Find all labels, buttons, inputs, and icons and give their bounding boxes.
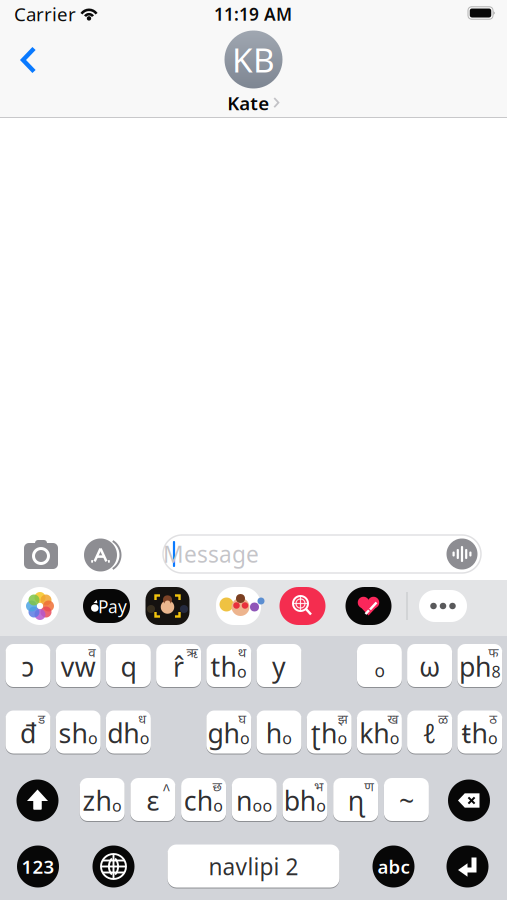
button[interactable]: đ xyxy=(5,710,50,754)
button[interactable]: Apps xyxy=(84,538,124,572)
staticText: ɛ xyxy=(146,783,159,818)
button[interactable]: Return xyxy=(446,845,488,887)
button[interactable]: ~ xyxy=(384,778,429,822)
staticText: 11:19 AM xyxy=(214,2,292,25)
staticText: ड xyxy=(38,710,45,727)
staticText: ठ xyxy=(489,710,497,727)
button[interactable]: ɛ xyxy=(130,778,175,822)
button[interactable]: Photos xyxy=(21,587,59,625)
button[interactable]: ph xyxy=(457,644,502,688)
staticText: झ xyxy=(338,710,348,727)
staticText: ~ xyxy=(399,783,414,818)
button[interactable]: ɔ xyxy=(5,644,50,688)
staticText: dh xyxy=(107,715,139,751)
button[interactable]: r̂ xyxy=(156,644,201,688)
staticText: भ xyxy=(314,777,323,795)
staticText: ळ xyxy=(438,710,448,727)
button[interactable]: vw xyxy=(56,644,101,688)
button[interactable]: Numbers xyxy=(17,845,59,887)
button[interactable]: h xyxy=(256,710,301,754)
staticText: Carrier xyxy=(14,2,76,26)
button[interactable]: kh xyxy=(357,710,402,754)
staticText: o xyxy=(488,727,498,749)
staticText: gh xyxy=(208,715,240,751)
button[interactable]: Camera xyxy=(23,540,58,570)
staticText: o xyxy=(88,727,98,749)
staticText: oo xyxy=(253,795,273,816)
button[interactable]: Delete xyxy=(448,779,490,821)
staticText: o xyxy=(140,727,150,749)
staticText: o xyxy=(240,727,250,749)
staticText: th xyxy=(211,649,237,684)
button[interactable]: ʈh xyxy=(307,710,352,754)
staticText: o xyxy=(316,795,326,816)
staticText: ʌ xyxy=(163,777,170,795)
staticText: r̂ xyxy=(173,649,184,684)
button[interactable]: th xyxy=(206,644,251,688)
button[interactable]: n xyxy=(232,778,277,822)
staticText: o xyxy=(213,795,223,816)
staticText: o xyxy=(282,727,292,749)
button[interactable]: sh xyxy=(56,710,101,754)
staticText: थ xyxy=(238,643,247,661)
button[interactable]: Back xyxy=(21,46,37,73)
staticText: ɳ xyxy=(348,783,364,818)
staticText: ch xyxy=(184,783,213,818)
staticText: o xyxy=(237,661,247,682)
button[interactable]: Apple Pay xyxy=(83,589,130,623)
staticText: abc xyxy=(377,854,409,879)
button[interactable]: zh xyxy=(80,778,125,822)
button[interactable]: Letters xyxy=(372,845,414,887)
staticText: kh xyxy=(359,715,389,751)
staticText: zh xyxy=(82,783,111,818)
staticText: ph xyxy=(459,649,491,684)
staticText: घ xyxy=(238,710,246,727)
staticText: sh xyxy=(58,715,87,751)
button[interactable]: y xyxy=(256,644,301,688)
button[interactable]: Dictate xyxy=(446,538,477,569)
button[interactable]: Space xyxy=(167,844,339,888)
staticText: ɔ xyxy=(21,649,34,684)
button[interactable]: ch xyxy=(181,778,226,822)
staticText: Kate xyxy=(227,91,269,115)
button[interactable]: Memoji Stickers xyxy=(145,587,189,625)
staticText: Pay xyxy=(98,595,127,618)
staticText: bh xyxy=(284,783,316,818)
staticText: o xyxy=(337,727,347,749)
staticText: navlipi 2 xyxy=(208,851,298,881)
button[interactable]: Shift xyxy=(16,779,58,821)
staticText: ध xyxy=(138,710,146,727)
button[interactable]: KB xyxy=(209,18,297,110)
button[interactable]: ɳ xyxy=(333,778,378,822)
button[interactable]: bh xyxy=(282,778,327,822)
staticText: n xyxy=(236,783,252,818)
staticText: h xyxy=(266,715,282,751)
staticText: ℓ xyxy=(423,715,437,751)
button[interactable]: gh xyxy=(206,710,251,754)
staticText: ऋ xyxy=(187,643,198,661)
button[interactable]: q xyxy=(106,644,151,688)
staticText: đ xyxy=(20,715,36,751)
staticText: ण xyxy=(364,777,374,795)
button[interactable]: ℓ xyxy=(407,710,452,754)
button[interactable]: Stickers xyxy=(216,587,261,625)
staticText: o xyxy=(112,795,122,816)
staticText: o xyxy=(374,659,384,682)
staticText: y xyxy=(272,649,286,684)
staticText: फ xyxy=(488,643,498,661)
staticText: Message xyxy=(163,539,259,569)
button[interactable]: dh xyxy=(106,710,151,754)
button[interactable]: More apps xyxy=(419,590,467,622)
button[interactable]: ŧh xyxy=(457,710,502,754)
button[interactable]: Next keyboard xyxy=(92,845,134,887)
button[interactable]: Message xyxy=(163,535,481,573)
button[interactable]: o xyxy=(357,644,402,688)
staticText: q xyxy=(120,649,136,684)
button[interactable]: #images xyxy=(279,587,325,625)
staticText: o xyxy=(390,727,400,749)
button[interactable]: ω xyxy=(407,644,452,688)
staticText: KB xyxy=(232,37,275,82)
button[interactable]: Digital Touch xyxy=(345,587,391,625)
staticText: 123 xyxy=(21,854,54,879)
staticText: ŧh xyxy=(462,715,488,751)
